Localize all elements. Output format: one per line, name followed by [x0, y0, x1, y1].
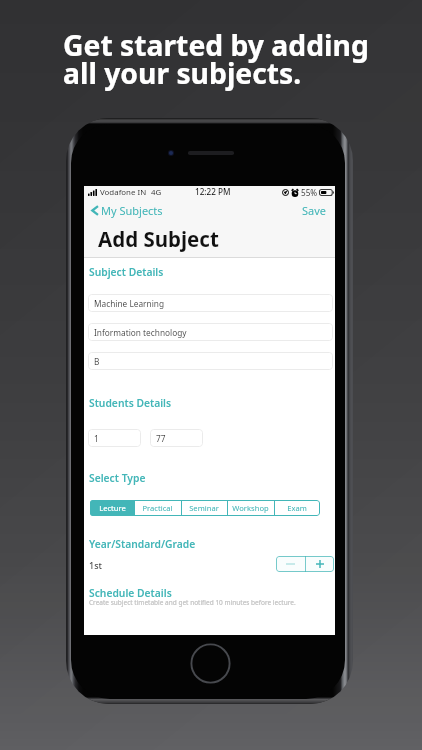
button[interactable]: 1 — [88, 429, 141, 447]
staticText: Information technology — [94, 327, 187, 338]
button[interactable]: B — [88, 352, 333, 370]
button[interactable]: Save — [296, 199, 333, 222]
button[interactable]: Information technology — [88, 323, 333, 341]
staticText: 1st — [89, 559, 102, 571]
staticText: Lecture — [99, 503, 126, 513]
button[interactable]: Seminar — [181, 500, 227, 516]
staticText: Practical — [142, 503, 173, 513]
staticText: 4G — [151, 187, 162, 198]
staticText: Create subject timetable and get notifie… — [89, 598, 296, 607]
staticText: Save — [302, 203, 327, 218]
staticText: Add Subject — [98, 225, 219, 253]
staticText: Vodafone IN — [100, 187, 147, 198]
staticText: 1 — [94, 433, 99, 444]
staticText: Select Type — [89, 471, 146, 485]
button[interactable]: Workshop — [227, 500, 274, 516]
staticText: Schedule Details — [89, 586, 172, 600]
staticText: Subject Details — [89, 265, 164, 279]
staticText: Machine Learning — [94, 298, 165, 309]
button[interactable]: My Subjects — [87, 199, 171, 222]
staticText: My Subjects — [101, 203, 163, 218]
button[interactable]: Machine Learning — [88, 294, 333, 312]
button[interactable]: Exam — [274, 500, 320, 516]
staticText: Get started by adding all your subjects. — [63, 26, 369, 92]
button[interactable]: Increase — [306, 556, 334, 572]
staticText: Year/Standard/Grade — [89, 537, 196, 551]
staticText: Workshop — [232, 503, 269, 513]
staticText: 55% — [301, 187, 318, 198]
button[interactable]: Decrease — [276, 556, 305, 572]
staticText: B — [94, 356, 100, 367]
staticText: 12:22 PM — [195, 186, 231, 197]
staticText: Students Details — [89, 396, 172, 410]
staticText: 77 — [156, 433, 166, 444]
button[interactable]: 77 — [150, 429, 203, 447]
button[interactable]: Lecture — [90, 500, 134, 516]
button[interactable]: Practical — [134, 500, 181, 516]
staticText: Seminar — [189, 503, 219, 513]
staticText: Exam — [287, 503, 307, 513]
